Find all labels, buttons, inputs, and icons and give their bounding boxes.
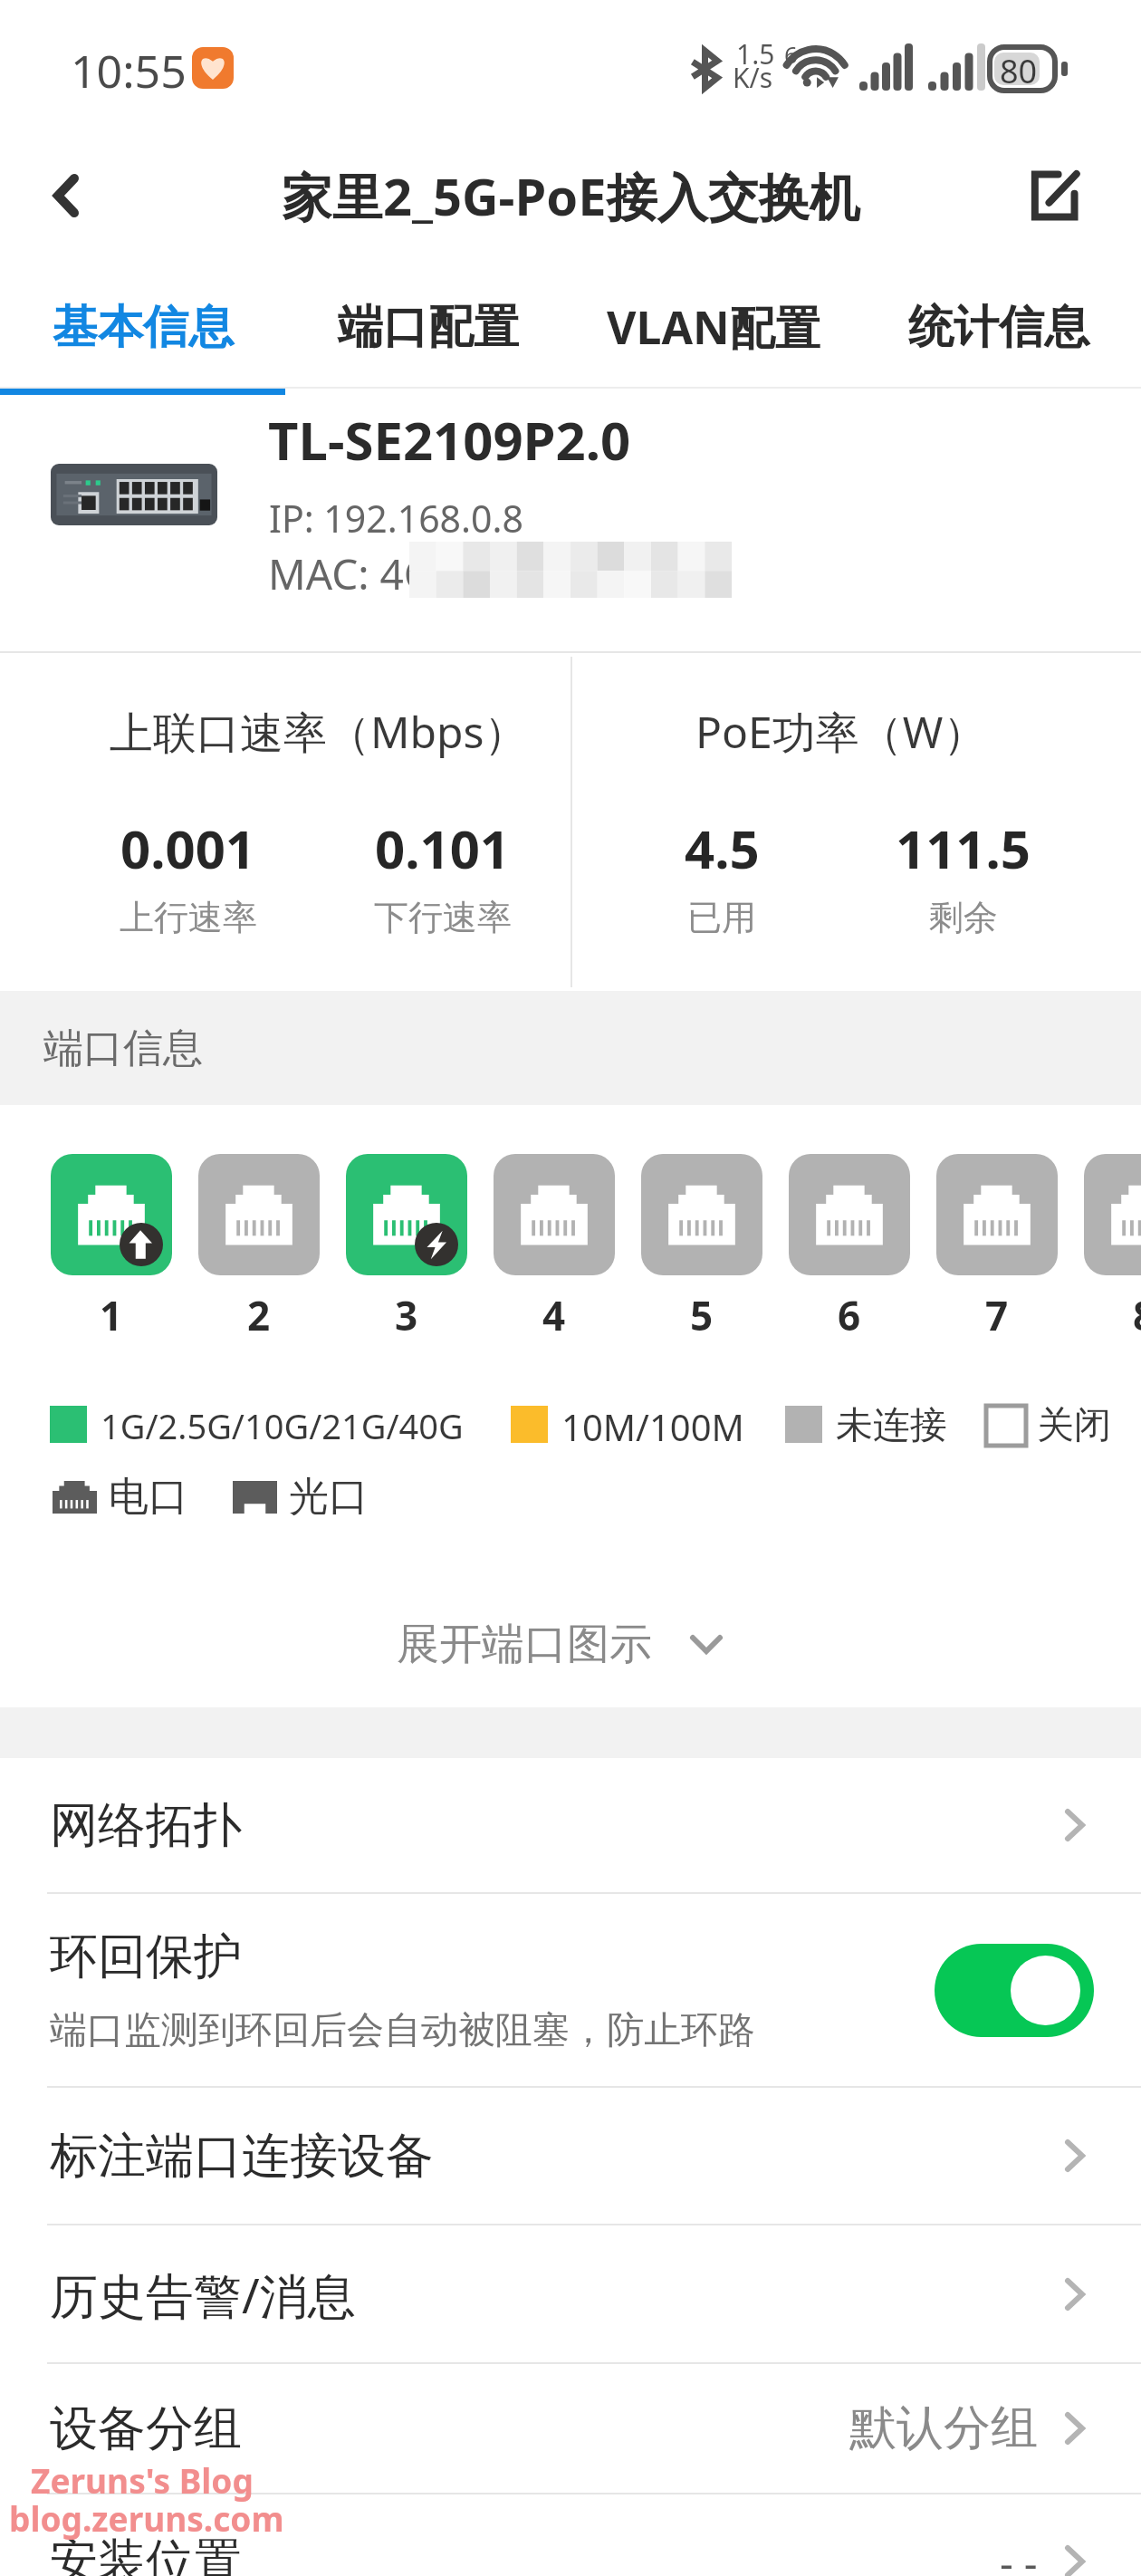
- staticText: 3: [395, 1288, 418, 1335]
- staticText: 基本信息: [53, 299, 234, 356]
- button[interactable]: 端口配置: [285, 260, 570, 394]
- button[interactable]: Port 7: [936, 1154, 1058, 1275]
- staticText: 展开端口图示: [397, 1618, 652, 1671]
- staticText: 统计信息: [908, 299, 1089, 356]
- staticText: 已用: [687, 896, 756, 939]
- staticText: 4.5: [685, 812, 760, 884]
- staticText: 2: [247, 1288, 271, 1335]
- staticText: 111.5: [896, 812, 1031, 884]
- button[interactable]: Port 1: [51, 1154, 172, 1275]
- staticText: 默认分组: [849, 2398, 1038, 2458]
- staticText: MAC: 4C: [268, 545, 430, 602]
- staticText: 端口配置: [338, 299, 519, 356]
- staticText: 上联口速率（Mbps）: [110, 702, 528, 762]
- staticText: 未连接: [836, 1402, 947, 1449]
- staticText: 安装位置: [50, 2532, 242, 2576]
- staticText: Zeruns's Blog: [31, 2457, 254, 2503]
- button[interactable]: 统计信息: [856, 260, 1141, 394]
- staticText: 电口: [109, 1472, 188, 1522]
- staticText: 0.101: [375, 812, 511, 884]
- button[interactable]: 基本信息: [0, 260, 285, 394]
- button[interactable]: 设备分组: [0, 2364, 1141, 2493]
- staticText: 6: [838, 1288, 861, 1335]
- staticText: 80: [1000, 49, 1038, 93]
- button[interactable]: Port 6: [789, 1154, 910, 1275]
- staticText: 网络拓扑: [50, 1795, 242, 1856]
- button[interactable]: VLAN配置: [570, 260, 856, 394]
- staticText: 10M/100M: [561, 1402, 744, 1451]
- staticText: 关闭: [1037, 1402, 1111, 1449]
- button[interactable]: Port 4: [494, 1154, 615, 1275]
- button[interactable]: Port 8: [1084, 1154, 1141, 1275]
- staticText: - -: [1000, 2533, 1038, 2576]
- button[interactable]: 安装位置: [0, 2494, 1141, 2576]
- staticText: 4: [542, 1288, 566, 1335]
- staticText: 环回保护: [50, 1927, 242, 1987]
- staticText: 上行速率: [120, 896, 257, 939]
- staticText: 1: [100, 1288, 123, 1335]
- staticText: 家里2_5G-PoE接入交换机: [282, 161, 860, 230]
- button[interactable]: 网络拓扑: [0, 1758, 1141, 1892]
- button[interactable]: Loop protection toggle: [935, 1944, 1094, 2037]
- staticText: 标注端口连接设备: [50, 2126, 434, 2187]
- button[interactable]: 标注端口连接设备: [0, 2088, 1141, 2224]
- staticText: 10:55: [71, 40, 187, 101]
- staticText: 7: [985, 1288, 1009, 1335]
- staticText: blog.zeruns.com: [9, 2495, 284, 2541]
- staticText: 设备分组: [50, 2398, 242, 2459]
- staticText: 5: [690, 1288, 714, 1335]
- staticText: 1G/2.5G/10G/21G/40G: [101, 1402, 464, 1449]
- button[interactable]: 历史告警/消息: [0, 2225, 1141, 2362]
- button[interactable]: Port 5: [641, 1154, 762, 1275]
- staticText: 端口监测到环回后会自动被阻塞，防止环路: [50, 2007, 755, 2054]
- button[interactable]: Edit: [965, 138, 1141, 254]
- staticText: 下行速率: [374, 896, 512, 939]
- staticText: K/s: [733, 59, 773, 96]
- staticText: 剩余: [929, 896, 998, 939]
- staticText: VLAN配置: [607, 296, 820, 358]
- button[interactable]: Port 3: [346, 1154, 467, 1275]
- staticText: 历史告警/消息: [50, 2262, 356, 2327]
- staticText: 8: [1133, 1288, 1141, 1335]
- button[interactable]: Back: [0, 138, 134, 254]
- staticText: TL-SE2109P2.0: [268, 404, 631, 476]
- staticText: 6: [784, 38, 798, 70]
- button[interactable]: 环回保护: [0, 1894, 1141, 2086]
- staticText: 0.001: [120, 812, 256, 884]
- button[interactable]: 展开端口图示: [0, 1581, 1130, 1707]
- button[interactable]: Port 2: [198, 1154, 320, 1275]
- staticText: 1.5: [736, 35, 775, 72]
- staticText: IP: 192.168.0.8: [269, 493, 523, 543]
- staticText: PoE功率（W）: [695, 702, 987, 762]
- staticText: 端口信息: [43, 1024, 203, 1073]
- staticText: 光口: [289, 1472, 369, 1522]
